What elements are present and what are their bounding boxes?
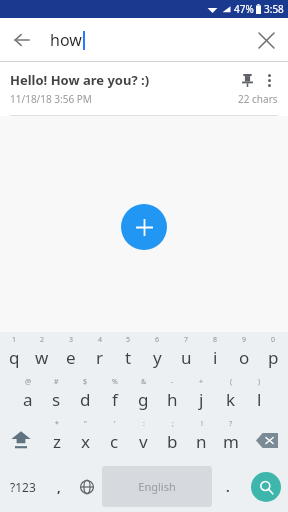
staticText: 1: [12, 335, 17, 345]
staticText: ": [84, 419, 87, 429]
button[interactable]: .: [212, 461, 243, 512]
button[interactable]: Change language: [71, 461, 102, 512]
button[interactable]: More options: [260, 71, 278, 89]
staticText: c: [110, 430, 119, 453]
button[interactable]: 4: [85, 335, 114, 377]
button[interactable]: ': [100, 419, 129, 461]
staticText: $: [83, 377, 88, 387]
button[interactable]: +: [187, 377, 216, 419]
staticText: ?: [229, 419, 233, 429]
staticText: (: [230, 377, 233, 387]
button[interactable]: Shift: [0, 419, 42, 461]
staticText: 2: [40, 335, 45, 345]
staticText: English: [138, 479, 176, 494]
button[interactable]: 6: [143, 335, 172, 377]
staticText: how: [50, 29, 82, 51]
staticText: ?123: [10, 479, 36, 495]
button[interactable]: -: [158, 377, 187, 419]
button[interactable]: Backspace: [245, 419, 288, 461]
staticText: Hello! How are you? :): [10, 71, 150, 89]
staticText: ,: [57, 478, 61, 496]
staticText: -: [171, 377, 174, 387]
staticText: u: [181, 346, 192, 369]
staticText: s: [52, 388, 61, 411]
button[interactable]: 1: [0, 335, 28, 377]
staticText: t: [125, 346, 132, 369]
button[interactable]: Back: [0, 18, 44, 62]
staticText: 4: [98, 335, 103, 345]
staticText: ): [258, 377, 261, 387]
staticText: h: [167, 388, 178, 411]
button[interactable]: 2: [28, 335, 56, 377]
staticText: b: [167, 430, 178, 453]
staticText: g: [138, 388, 149, 411]
staticText: n: [196, 430, 207, 453]
button[interactable]: ,: [46, 461, 71, 512]
button[interactable]: Search: [251, 472, 281, 502]
staticText: ': [114, 419, 116, 429]
staticText: a: [23, 388, 33, 411]
button[interactable]: 5: [114, 335, 143, 377]
staticText: 6: [155, 335, 160, 345]
button[interactable]: !: [187, 419, 216, 461]
button[interactable]: ": [71, 419, 100, 461]
staticText: d: [80, 388, 91, 411]
staticText: ;: [172, 419, 174, 429]
staticText: %: [112, 377, 118, 387]
staticText: i: [213, 346, 218, 369]
button[interactable]: 8: [201, 335, 230, 377]
staticText: 5: [126, 335, 131, 345]
staticText: +: [199, 377, 204, 387]
staticText: e: [66, 346, 76, 369]
button[interactable]: Clear search: [244, 18, 288, 62]
button[interactable]: *: [42, 419, 71, 461]
button[interactable]: ?: [216, 419, 245, 461]
staticText: @: [25, 377, 32, 387]
button[interactable]: English: [102, 466, 212, 507]
staticText: l: [257, 388, 262, 411]
button[interactable]: ;: [158, 419, 187, 461]
staticText: j: [199, 388, 204, 411]
button[interactable]: (: [216, 377, 245, 419]
staticText: 11/18/18 3:56 PM: [10, 92, 92, 106]
staticText: z: [53, 430, 61, 453]
button[interactable]: 3: [56, 335, 85, 377]
button[interactable]: %: [100, 377, 129, 419]
staticText: o: [239, 346, 250, 369]
staticText: !: [201, 419, 203, 429]
button[interactable]: Add note: [121, 204, 167, 250]
staticText: v: [139, 430, 148, 453]
button[interactable]: @: [13, 377, 42, 419]
staticText: 8: [213, 335, 218, 345]
button[interactable]: Hello! How are you? :): [0, 62, 288, 116]
staticText: p: [268, 346, 279, 369]
staticText: *: [55, 419, 59, 429]
staticText: 7: [184, 335, 189, 345]
button[interactable]: 0: [259, 335, 288, 377]
button[interactable]: 7: [172, 335, 201, 377]
staticText: 0: [271, 335, 276, 345]
button[interactable]: &: [129, 377, 158, 419]
staticText: k: [226, 388, 236, 411]
staticText: 47%: [234, 2, 254, 16]
staticText: 9: [242, 335, 247, 345]
staticText: w: [35, 346, 49, 369]
staticText: :: [143, 419, 145, 429]
staticText: m: [223, 430, 239, 453]
staticText: #: [54, 377, 59, 387]
button[interactable]: Pin note: [238, 71, 256, 89]
staticText: f: [112, 388, 118, 411]
button[interactable]: #: [42, 377, 71, 419]
staticText: 3: [69, 335, 74, 345]
button[interactable]: $: [71, 377, 100, 419]
button[interactable]: ): [245, 377, 274, 419]
button[interactable]: 9: [230, 335, 259, 377]
staticText: 22 chars: [238, 92, 278, 106]
staticText: x: [81, 430, 90, 453]
staticText: &: [141, 377, 147, 387]
staticText: y: [153, 346, 162, 369]
staticText: r: [96, 346, 104, 369]
staticText: q: [9, 346, 20, 369]
button[interactable]: ?123: [0, 461, 46, 512]
button[interactable]: :: [129, 419, 158, 461]
